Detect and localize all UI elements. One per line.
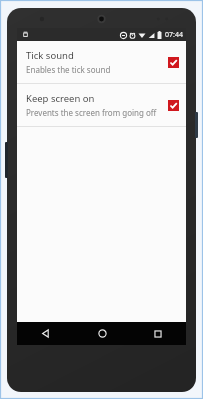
staticText: Prevents the screen from going off bbox=[26, 107, 157, 118]
button[interactable]: Toggle setting bbox=[167, 99, 179, 111]
staticText: Keep screen on bbox=[26, 92, 95, 105]
button[interactable]: Recent apps bbox=[130, 322, 186, 345]
button[interactable]: Toggle setting bbox=[167, 56, 179, 68]
staticText: 07:44 bbox=[165, 30, 183, 40]
button[interactable]: Back bbox=[17, 322, 74, 345]
button[interactable]: Keep screen on bbox=[17, 84, 186, 126]
staticText: Tick sound bbox=[26, 49, 74, 62]
staticText: Enables the tick sound bbox=[26, 64, 111, 75]
button[interactable]: Tick sound bbox=[17, 41, 186, 83]
button[interactable]: Home bbox=[74, 322, 130, 345]
